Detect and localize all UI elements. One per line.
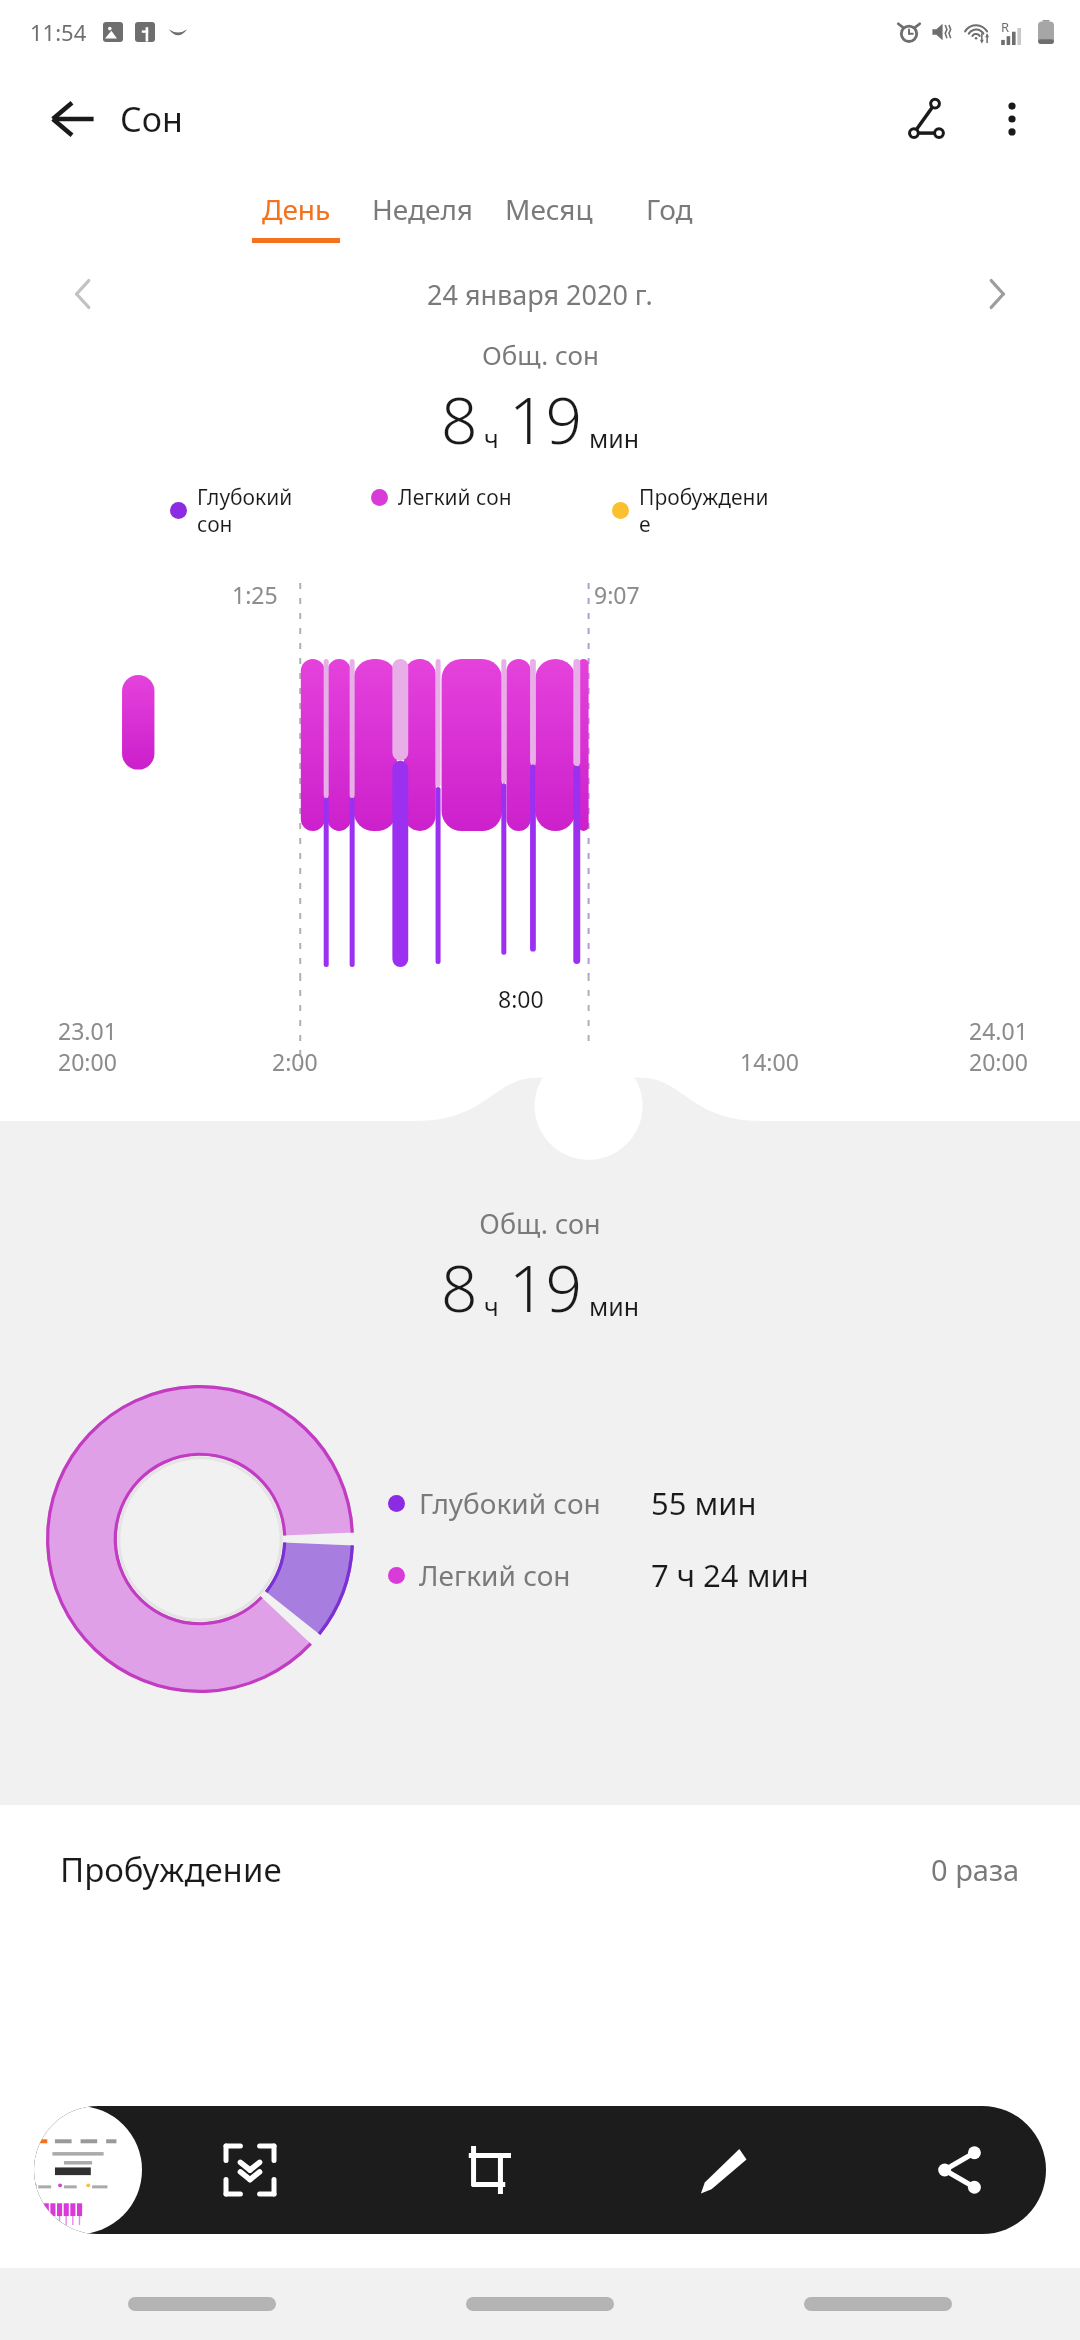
staticText: R — [1001, 18, 1010, 36]
button[interactable]: Год — [609, 190, 729, 243]
button[interactable]: Пробуждение — [0, 1805, 1080, 1933]
staticText: 20:00 — [58, 1046, 117, 1077]
staticText: Общ. сон — [482, 337, 599, 372]
staticText: День — [262, 190, 331, 228]
staticText: Месяц — [505, 190, 593, 228]
staticText: 9:07 — [594, 579, 640, 610]
staticText: Легкий сон — [398, 483, 578, 512]
staticText: 0 раза — [931, 1850, 1020, 1889]
button[interactable]: Глубокий сон — [388, 1482, 757, 1524]
button[interactable]: Next day — [964, 261, 1030, 327]
staticText: 55 мин — [651, 1482, 757, 1524]
button[interactable]: Scroll capture — [204, 2124, 296, 2216]
button[interactable]: Navigation gesture hint — [128, 2297, 276, 2311]
staticText: 7 ч 24 мин — [651, 1554, 809, 1596]
staticText: 23.01 — [58, 1015, 117, 1046]
staticText: мин — [589, 1289, 640, 1323]
staticText: 2:00 — [272, 1046, 318, 1077]
staticText: ч — [484, 421, 499, 455]
button[interactable]: More options — [970, 77, 1054, 161]
staticText: Пробуждение — [60, 1847, 282, 1892]
button[interactable]: Share — [914, 2124, 1006, 2216]
staticText: Общ. сон — [0, 1205, 1080, 1242]
button[interactable]: Crop — [441, 2124, 533, 2216]
staticText: Неделя — [372, 190, 473, 228]
staticText: ч — [484, 1289, 499, 1323]
button[interactable]: Navigation gesture hint — [804, 2297, 952, 2311]
staticText: Глубокий сон — [197, 483, 337, 538]
staticText: 24.01 — [969, 1015, 1028, 1046]
staticText: Сон — [120, 96, 183, 142]
button[interactable]: Back — [34, 81, 110, 157]
button[interactable]: Navigation gesture hint — [466, 2297, 614, 2311]
staticText: Год — [646, 190, 693, 228]
staticText: 24 января 2020 г. — [427, 276, 653, 313]
staticText: мин — [589, 421, 640, 455]
staticText: 11:54 — [30, 17, 87, 47]
button[interactable]: Месяц — [489, 190, 609, 243]
staticText: Глубокий сон — [419, 1484, 651, 1522]
staticText: 19 — [509, 376, 583, 463]
button[interactable]: Неделя — [356, 190, 489, 243]
button[interactable]: Draw — [677, 2124, 769, 2216]
button[interactable]: Previous day — [50, 261, 116, 327]
staticText: 19 — [509, 1244, 583, 1331]
staticText: 1:25 — [232, 579, 278, 610]
staticText: 20:00 — [969, 1046, 1028, 1077]
staticText: 14:00 — [740, 1046, 799, 1077]
staticText: 8 — [441, 376, 478, 463]
staticText: 8:00 — [498, 983, 544, 1014]
button[interactable]: Preview — [34, 2106, 142, 2234]
staticText: Легкий сон — [419, 1556, 651, 1594]
staticText: 8 — [441, 1244, 478, 1331]
button[interactable]: День — [236, 190, 356, 243]
button[interactable]: Trend — [886, 77, 970, 161]
button[interactable]: Легкий сон — [388, 1554, 809, 1596]
staticText: Пробуждени е — [639, 483, 839, 538]
